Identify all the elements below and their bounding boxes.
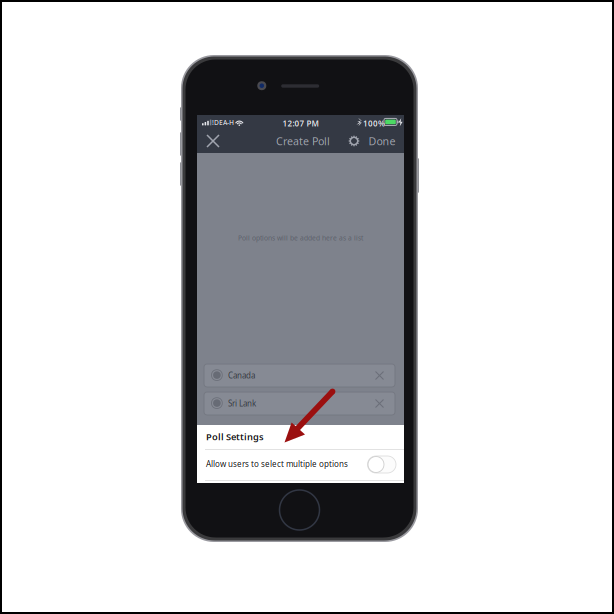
button[interactable]: Poll settings (342, 129, 366, 153)
staticText: !DEA-H (212, 118, 234, 127)
staticText: Create Poll (276, 134, 330, 148)
button[interactable]: Done (366, 129, 398, 153)
staticText: Canada (228, 370, 255, 381)
staticText: Poll options will be added here as a lis… (238, 234, 363, 242)
staticText: Allow users to select multiple options (206, 459, 348, 469)
button[interactable]: Allow users to select multiple options (197, 450, 404, 480)
staticText: 12:07 PM (282, 118, 318, 129)
button[interactable]: Close (198, 129, 228, 153)
button[interactable]: Create Poll (263, 129, 343, 153)
staticText: 100% (363, 118, 385, 129)
staticText: Poll Settings (206, 430, 264, 443)
staticText: Done (368, 134, 395, 148)
button[interactable]: Remove Sri Lank (370, 392, 388, 415)
button[interactable]: Remove Canada (370, 364, 388, 387)
staticText: Sri Lank (228, 398, 256, 409)
